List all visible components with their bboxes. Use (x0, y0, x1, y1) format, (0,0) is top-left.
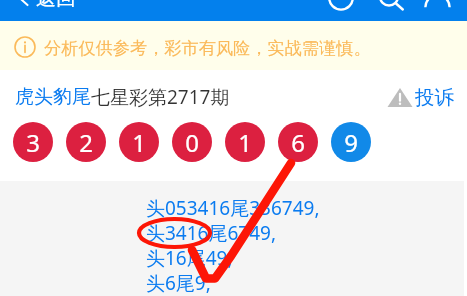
staticText: 头3416尾6749, (146, 220, 277, 245)
staticText: 投诉 (415, 85, 454, 110)
button[interactable]: 头053416尾336749, (146, 195, 320, 220)
button[interactable]: 1 (225, 122, 265, 162)
staticText: 头16尾49, (146, 245, 233, 270)
staticText: 1 (132, 126, 146, 159)
staticText: 分析仅供参考，彩市有风险，实战需谨慎。 (44, 37, 371, 59)
button[interactable]: 头3416尾6749, (146, 220, 277, 245)
staticText: 七星彩第2717期 (91, 84, 230, 110)
staticText: 9 (344, 126, 358, 159)
button[interactable]: 头16尾49, (146, 245, 233, 270)
button[interactable]: 1 (119, 122, 159, 162)
button[interactable]: 9 (331, 122, 371, 162)
staticText: 头053416尾336749, (146, 195, 320, 220)
staticText: 头6尾9, (146, 270, 211, 295)
button[interactable]: 0 (172, 122, 212, 162)
staticText: 0 (185, 126, 199, 159)
button[interactable]: 投诉 (387, 85, 454, 110)
button[interactable]: 返回 (14, 0, 78, 13)
staticText: 6 (291, 126, 305, 159)
staticText: 虎头豹尾 (15, 85, 91, 109)
button[interactable]: Refresh (424, 0, 452, 23)
button[interactable]: 头6尾9, (146, 270, 211, 295)
button[interactable]: Search (378, 0, 404, 11)
staticText: 3 (26, 126, 40, 159)
button[interactable]: 2 (66, 122, 106, 162)
staticText: 2 (79, 126, 93, 159)
button[interactable]: Account (328, 0, 356, 10)
staticText: 1 (238, 126, 252, 159)
button[interactable]: 6 (278, 122, 318, 162)
staticText: 返回 (36, 0, 76, 11)
button[interactable]: 3 (13, 122, 53, 162)
